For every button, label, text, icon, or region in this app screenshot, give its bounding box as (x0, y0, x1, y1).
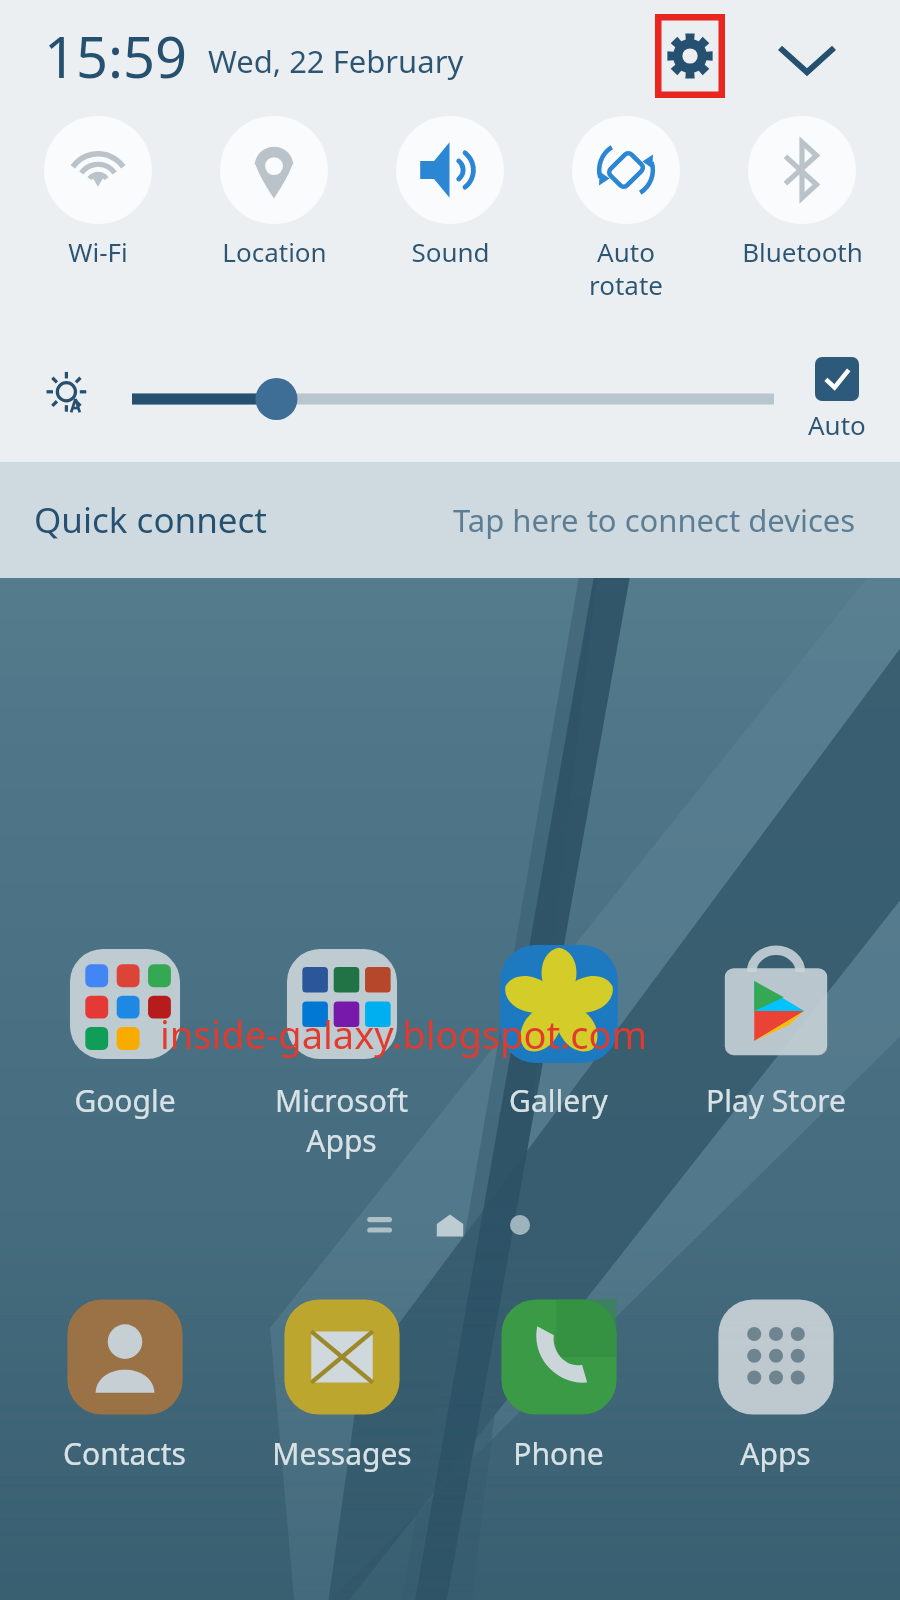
button[interactable]: Contacts (16, 1293, 233, 1474)
button[interactable]: Home page (428, 1203, 472, 1247)
staticText: Contacts (63, 1433, 186, 1474)
button[interactable]: Sound (362, 112, 538, 269)
staticText: Auto rotate (589, 234, 663, 303)
button[interactable]: Auto rotate (538, 112, 714, 303)
button[interactable]: Messages (233, 1293, 450, 1474)
button[interactable]: Gallery (450, 940, 667, 1121)
staticText: Wed, 22 February (208, 40, 464, 82)
staticText: Bluetooth (742, 234, 863, 269)
staticText: inside-galaxy.blogspot.com (160, 1008, 648, 1060)
button[interactable]: Apps (667, 1293, 884, 1474)
staticText: Sound (411, 234, 490, 269)
staticText: Location (222, 234, 327, 269)
button[interactable]: Brightness slider (132, 371, 774, 427)
button[interactable]: Quick connect (0, 462, 900, 578)
staticText: Messages (272, 1433, 412, 1474)
button[interactable]: Page 3 (500, 1205, 540, 1245)
staticText: Wi-Fi (68, 234, 128, 269)
button[interactable]: Wi-Fi (10, 112, 186, 269)
staticText: 15:59 (44, 18, 188, 94)
button[interactable]: Google (16, 940, 233, 1121)
button[interactable]: Phone (450, 1293, 667, 1474)
staticText: Phone (513, 1433, 604, 1474)
button[interactable]: Bluetooth (714, 112, 890, 269)
staticText: Apps (740, 1433, 811, 1474)
staticText: Tap here to connect devices (453, 499, 856, 541)
staticText: Google (74, 1080, 176, 1121)
staticText: Microsoft Apps (275, 1080, 408, 1161)
staticText: Quick connect (34, 496, 267, 544)
staticText: Play Store (706, 1080, 846, 1121)
button[interactable]: Play Store (667, 940, 884, 1121)
button[interactable]: Collapse (762, 11, 852, 101)
button[interactable]: Location (186, 112, 362, 269)
button[interactable]: Widgets (360, 1205, 400, 1245)
button[interactable]: Microsoft Apps (233, 940, 450, 1161)
button[interactable]: Brightness (34, 363, 106, 435)
staticText: Auto (808, 407, 866, 442)
staticText: Gallery (509, 1080, 608, 1121)
button[interactable]: Settings (655, 14, 725, 98)
button[interactable]: Auto (808, 357, 866, 442)
